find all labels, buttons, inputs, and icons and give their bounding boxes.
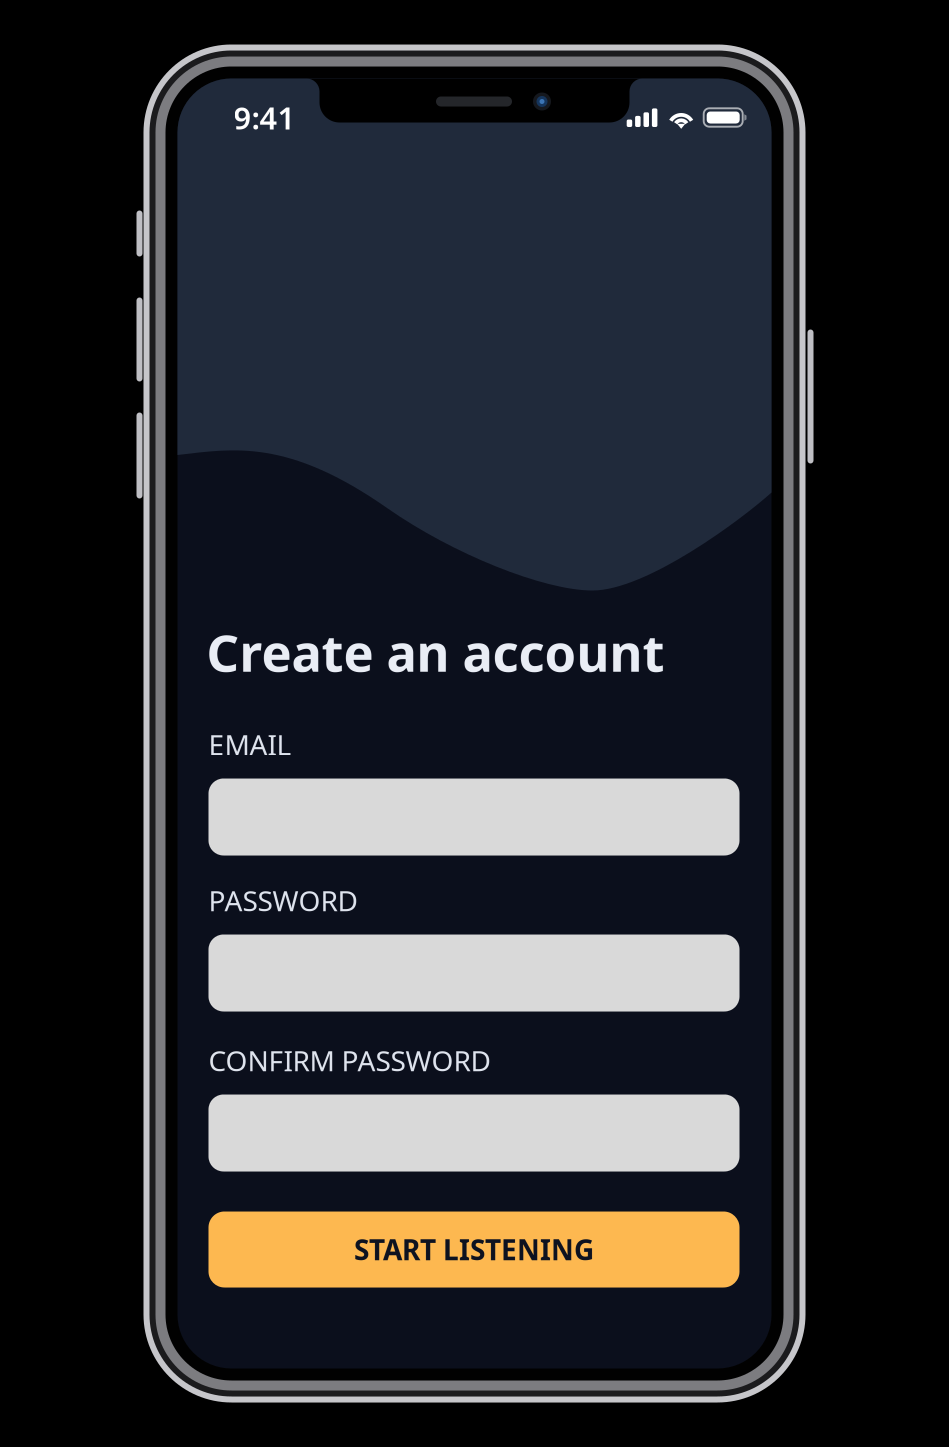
staticText: CONFIRM PASSWORD: [208, 1042, 490, 1079]
button[interactable]: PASSWORD: [208, 934, 739, 1011]
staticText: 9:41: [233, 97, 295, 138]
staticText: EMAIL: [208, 726, 291, 763]
button[interactable]: EMAIL: [208, 778, 739, 855]
staticText: PASSWORD: [208, 882, 357, 919]
staticText: START LISTENING: [354, 1231, 594, 1268]
button[interactable]: CONFIRM PASSWORD: [208, 1094, 739, 1171]
button[interactable]: START LISTENING: [208, 1211, 739, 1287]
staticText: Create an account: [206, 618, 664, 686]
